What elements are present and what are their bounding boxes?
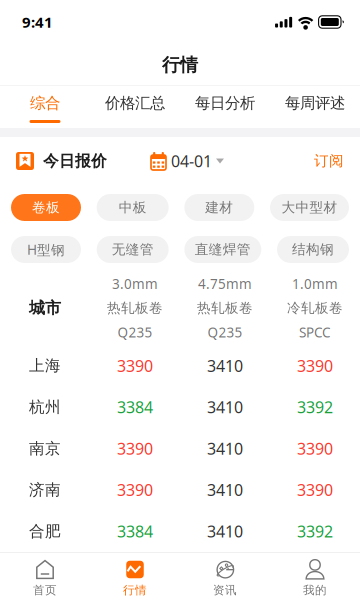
staticText: 3410 [207,355,243,377]
staticText: 热轧板卷 [197,299,253,316]
button[interactable]: 结构钢 [277,236,349,263]
staticText: Q235 [117,323,152,341]
staticText: 3384 [117,520,153,542]
staticText: 行情 [162,54,198,76]
staticText: 卷板 [32,199,60,216]
staticText: 每日分析 [195,93,255,113]
staticText: 今日报价 [43,151,107,171]
staticText: 3390 [297,479,333,501]
staticText: 无缝管 [112,241,154,258]
staticText: 每周评述 [285,93,345,113]
staticText: 3390 [117,355,153,377]
staticText: 冷轧板卷 [287,299,343,316]
button[interactable]: 无缝管 [97,236,169,263]
button[interactable]: 直缝焊管 [184,236,261,263]
staticText: 济南 [29,480,61,500]
button[interactable]: 价格汇总 [90,86,180,128]
button[interactable]: 卷板 [11,194,81,221]
staticText: 行情 [123,583,147,597]
staticText: Q235 [207,323,242,341]
button[interactable]: 首页 [0,552,90,600]
button[interactable]: 综合 [0,86,90,128]
staticText: 3390 [117,438,153,459]
button[interactable]: 每日分析 [180,86,270,128]
button[interactable]: 建材 [184,194,254,221]
staticText: 价格汇总 [105,93,165,113]
staticText: 4.75mm [198,275,252,293]
staticText: 我的 [303,583,327,597]
button[interactable]: 订阅 [314,152,344,170]
staticText: 大中型材 [281,199,337,216]
staticText: 3410 [207,396,243,418]
staticText: 3410 [207,479,243,501]
staticText: 3410 [207,438,243,459]
staticText: H型钢 [27,240,65,259]
staticText: 1.0mm [292,275,338,293]
staticText: 3392 [297,520,333,542]
staticText: 订阅 [314,152,344,170]
staticText: 3.0mm [112,275,158,293]
staticText: 3410 [207,520,243,542]
staticText: 04-01 [171,150,212,172]
staticText: 资讯 [213,583,237,597]
staticText: 首页 [33,583,57,597]
staticText: 建材 [205,199,233,216]
staticText: 直缝焊管 [195,241,251,258]
button[interactable]: 04-01 [150,150,224,172]
staticText: 南京 [29,439,61,458]
staticText: 结构钢 [292,241,334,258]
staticText: 城市 [29,298,61,318]
staticText: SPCC [299,323,331,341]
staticText: 3390 [297,355,333,377]
staticText: 3392 [297,396,333,418]
button[interactable]: 行情 [90,552,180,600]
staticText: 9:41 [22,12,53,32]
staticText: 热轧板卷 [107,299,163,316]
staticText: 3390 [117,479,153,501]
staticText: 中板 [119,199,147,216]
button[interactable]: 我的 [270,552,360,600]
staticText: 综合 [30,93,60,113]
button[interactable]: H型钢 [11,236,81,263]
button[interactable]: 中板 [97,194,169,221]
staticText: 3390 [297,438,333,459]
staticText: 合肥 [29,521,61,541]
staticText: 杭州 [29,397,61,417]
button[interactable]: 每周评述 [270,86,360,128]
staticText: 3384 [117,396,153,418]
button[interactable]: 资讯 [180,552,270,600]
staticText: 上海 [29,356,61,375]
button[interactable]: 大中型材 [270,194,349,221]
